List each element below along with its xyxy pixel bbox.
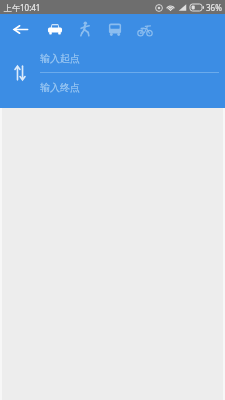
button[interactable]: Bike bbox=[130, 14, 160, 44]
button[interactable]: 输入起点 bbox=[40, 44, 219, 72]
button[interactable]: Bus bbox=[100, 14, 130, 44]
staticText: 36% bbox=[206, 2, 222, 13]
staticText: 上午10:41 bbox=[4, 2, 41, 13]
button[interactable]: Swap start and end bbox=[0, 44, 40, 102]
button[interactable]: 输入终点 bbox=[40, 73, 219, 102]
staticText: 输入起点 bbox=[40, 52, 80, 65]
button[interactable]: Walk bbox=[70, 14, 100, 44]
button[interactable]: Drive bbox=[40, 14, 70, 44]
staticText: 输入终点 bbox=[40, 81, 80, 94]
button[interactable]: Back bbox=[0, 14, 40, 44]
